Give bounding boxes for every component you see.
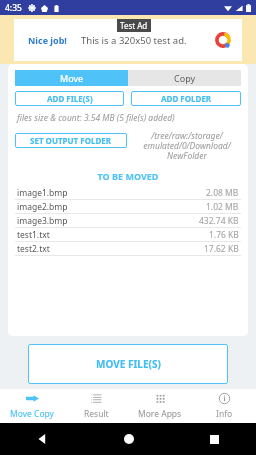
button[interactable]: ADD FILE(S): [15, 91, 124, 106]
button[interactable]: MOVE FILE(S): [28, 344, 228, 384]
button[interactable]: image2.bmp: [15, 200, 241, 214]
button[interactable]: More Apps: [128, 389, 192, 423]
staticText: More Apps: [138, 408, 182, 420]
staticText: 17.62 KB: [204, 243, 239, 255]
staticText: Info: [216, 408, 233, 420]
staticText: image1.bmp: [17, 187, 206, 199]
button[interactable]: Home: [118, 428, 140, 450]
button[interactable]: test2.txt: [15, 242, 241, 256]
staticText: files size & count: 3.54 MB (5 file(s) a…: [17, 112, 175, 124]
staticText: Test Ad: [120, 20, 148, 31]
staticText: This is a 320x50 test ad.: [81, 34, 187, 47]
button[interactable]: Back: [32, 428, 54, 450]
button[interactable]: image1.bmp: [15, 186, 241, 200]
button[interactable]: Result: [64, 389, 128, 423]
button[interactable]: image3.bmp: [15, 214, 241, 228]
staticText: Move Copy: [10, 408, 54, 420]
staticText: image2.bmp: [17, 201, 206, 213]
staticText: test1.txt: [17, 229, 209, 241]
button[interactable]: Move Copy: [0, 389, 64, 423]
staticText: Result: [84, 408, 109, 420]
button[interactable]: ADD FOLDER: [131, 91, 241, 106]
staticText: TO BE MOVED: [15, 170, 241, 182]
staticText: 1.76 KB: [209, 229, 239, 241]
staticText: 1.02 MB: [206, 201, 239, 213]
button[interactable]: SET OUTPUT FOLDER: [15, 133, 127, 148]
button[interactable]: Move: [15, 70, 128, 86]
staticText: Nice job!: [28, 34, 67, 46]
button[interactable]: Test advertisement: [14, 19, 242, 61]
staticText: MOVE FILE(S): [96, 357, 161, 371]
button[interactable]: Copy: [128, 70, 241, 86]
staticText: Copy: [174, 72, 196, 84]
button[interactable]: test1.txt: [15, 228, 241, 242]
staticText: image3.bmp: [17, 215, 199, 227]
staticText: 432.74 KB: [199, 215, 239, 227]
staticText: SET OUTPUT FOLDER: [30, 135, 112, 146]
staticText: test2.txt: [17, 243, 204, 255]
staticText: Move: [60, 72, 84, 84]
staticText: /tree/raw:/storage/ emulated/0/Download/…: [133, 130, 241, 162]
staticText: ADD FILE(S): [47, 93, 93, 104]
button[interactable]: Recent apps: [203, 428, 225, 450]
staticText: ADD FOLDER: [161, 93, 212, 104]
button[interactable]: Info: [192, 389, 256, 423]
staticText: 4:35: [5, 2, 22, 14]
staticText: 2.08 MB: [206, 187, 239, 199]
